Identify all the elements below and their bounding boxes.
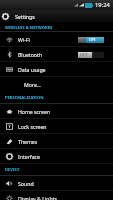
staticText: OFF	[80, 52, 88, 58]
staticText: More...	[24, 81, 41, 88]
staticText: Bluetooth	[18, 51, 43, 58]
staticText: WIRELESS & NETWORKS	[5, 25, 53, 31]
staticText: Interface	[18, 153, 41, 160]
button[interactable]: Wi-Fi on	[78, 37, 104, 43]
button[interactable]: Themes	[0, 134, 113, 149]
button[interactable]: Wi-Fi	[0, 32, 113, 47]
button[interactable]: Lock screen	[0, 119, 113, 134]
staticText: Sound	[18, 180, 34, 187]
staticText: Settings	[15, 13, 35, 20]
button[interactable]: Interface	[0, 149, 113, 164]
button[interactable]: More...	[0, 77, 113, 92]
button[interactable]: Data usage	[0, 62, 113, 77]
staticText: ON	[89, 37, 96, 43]
button[interactable]: Bluetooth off	[78, 52, 104, 58]
button[interactable]: Bluetooth	[0, 47, 113, 62]
staticText: Lock screen	[18, 123, 47, 130]
staticText: Home screen	[18, 108, 51, 115]
staticText: PERSONALIZATION	[5, 95, 44, 101]
staticText: Themes	[18, 138, 38, 145]
staticText: DEVICE	[5, 167, 20, 173]
staticText: Display & Lights	[18, 195, 57, 200]
staticText: Wi-Fi	[18, 36, 30, 43]
staticText: 19:24	[95, 1, 110, 9]
staticText: Data usage	[18, 66, 46, 73]
button[interactable]: Home screen	[0, 104, 113, 119]
button[interactable]: Sound	[0, 176, 113, 191]
button[interactable]: Display & Lights	[0, 188, 113, 200]
